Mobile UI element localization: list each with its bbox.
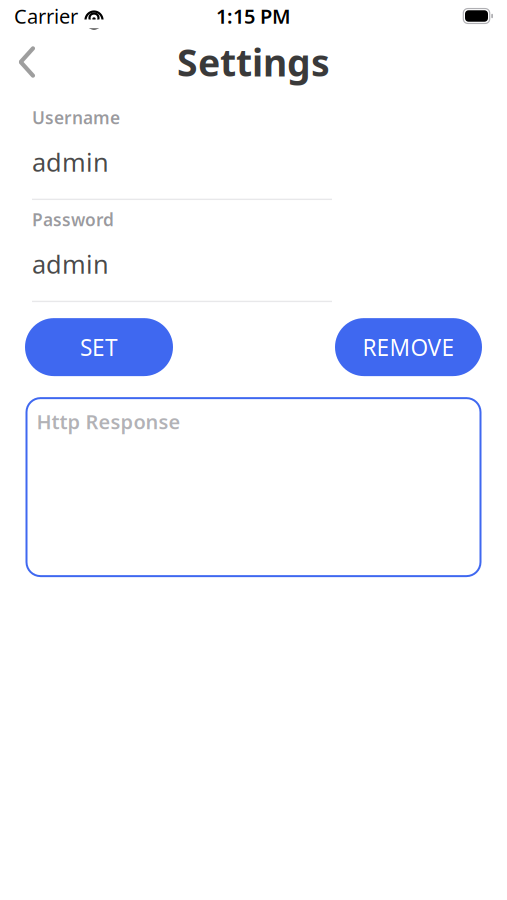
staticText: REMOVE bbox=[362, 332, 454, 362]
button[interactable]: REMOVE bbox=[335, 318, 482, 376]
staticText: Carrier bbox=[14, 3, 78, 29]
button[interactable]: SET bbox=[25, 318, 173, 376]
staticText: Username bbox=[32, 106, 120, 129]
staticText: Settings bbox=[177, 37, 330, 87]
button[interactable]: Back bbox=[0, 37, 54, 87]
staticText: admin bbox=[32, 145, 109, 179]
staticText: admin bbox=[32, 247, 109, 281]
staticText: 1:15 PM bbox=[216, 3, 291, 29]
staticText: SET bbox=[80, 332, 118, 362]
staticText: Http Response bbox=[36, 408, 180, 435]
staticText: Password bbox=[32, 208, 114, 231]
